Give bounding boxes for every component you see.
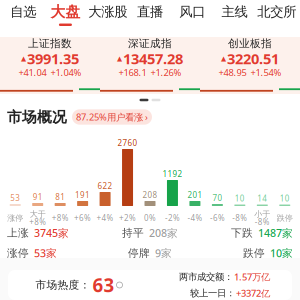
staticText: 北交所 [257,4,296,20]
staticText: 大于 [30,209,46,219]
button[interactable]: 深证成指 [100,37,200,94]
staticText: 创业板指 [228,37,272,50]
button[interactable]: 主线 [213,0,256,29]
staticText: 跌停 [277,213,293,223]
staticText: 3220.51 [227,49,279,68]
staticText: 3991.35 [27,49,79,68]
staticText: 3745家 [34,226,69,240]
staticText: 市场概况 [7,108,67,126]
staticText: 涨停 [7,246,29,260]
button[interactable]: 87.25%用户看涨 [72,109,152,125]
staticText: +8% [29,217,46,227]
staticText: +41.04 [18,66,46,79]
staticText: -2% [165,213,180,223]
staticText: 91 [33,192,43,202]
staticText: 13457.28 [123,49,183,68]
staticText: -8% [255,217,270,227]
staticText: 63 [92,273,114,297]
staticText: +1.26% [150,66,181,79]
staticText: 81 [55,192,65,202]
staticText: +1.04% [50,66,81,79]
staticText: 53家 [34,246,57,260]
staticText: 9家 [155,246,172,260]
button[interactable]: 大涨股 [87,0,129,29]
staticText: +48.95 [218,66,246,79]
staticText: 208 [142,190,157,200]
staticText: +2% [119,213,136,223]
staticText: 2760 [117,138,137,148]
staticText: 1.57万亿 [234,271,270,283]
staticText: 上涨 [7,226,29,239]
staticText: -6% [210,213,225,223]
staticText: 1487家 [258,226,293,240]
staticText: › [145,111,148,123]
staticText: 622 [98,181,113,191]
staticText: 201 [187,190,202,200]
staticText: 上证指数 [28,37,72,50]
staticText: 深证成指 [128,37,172,50]
staticText: +6% [74,213,91,223]
staticText: 较上一日： [190,287,235,299]
staticText: ▲ [21,55,26,62]
button[interactable]: 上证指数 [0,37,100,94]
button[interactable]: 大盘 [44,0,87,29]
staticText: 大涨股 [88,4,127,20]
button[interactable]: 创业板指 [200,37,300,94]
staticText: +3372亿 [236,287,270,299]
staticText: 涨停 [7,213,23,223]
staticText: 0% [144,213,156,223]
button[interactable]: 风口 [171,0,213,29]
staticText: 持平 [122,226,144,239]
staticText: ▲ [117,55,122,62]
staticText: 市场热度： [35,278,90,291]
staticText: 208家 [149,226,178,240]
staticText: 1192 [162,169,182,179]
staticText: 直播 [137,4,163,20]
staticText: 跌停 [243,246,265,260]
staticText: +8% [52,213,69,223]
staticText: 风口 [179,4,205,20]
staticText: 53 [10,193,20,203]
button[interactable]: 直播 [129,0,171,29]
staticText: 10 [235,193,245,204]
staticText: -8% [232,213,247,223]
staticText: 14 [257,193,267,204]
staticText: 191 [75,190,90,200]
staticText: 10 [280,193,290,204]
staticText: 主线 [222,4,248,20]
staticText: -4% [187,213,202,223]
staticText: 10家 [270,246,293,260]
button[interactable]: 自选 [2,0,44,29]
staticText: 70 [212,193,222,203]
staticText: ▲ [221,55,226,62]
staticText: +168.1 [118,66,146,79]
button[interactable]: 北交所 [256,0,298,29]
staticText: 大盘 [50,3,80,21]
staticText: 小于 [254,209,270,219]
staticText: 两市成交额： [179,271,233,283]
button[interactable]: 市场热度： [0,270,300,300]
staticText: +4% [97,213,114,223]
staticText: +1.54% [250,66,281,79]
staticText: 停牌 [128,246,150,260]
staticText: 下跌 [231,226,253,239]
staticText: 自选 [10,4,36,20]
staticText: 87.25%用户看涨 [76,111,143,123]
